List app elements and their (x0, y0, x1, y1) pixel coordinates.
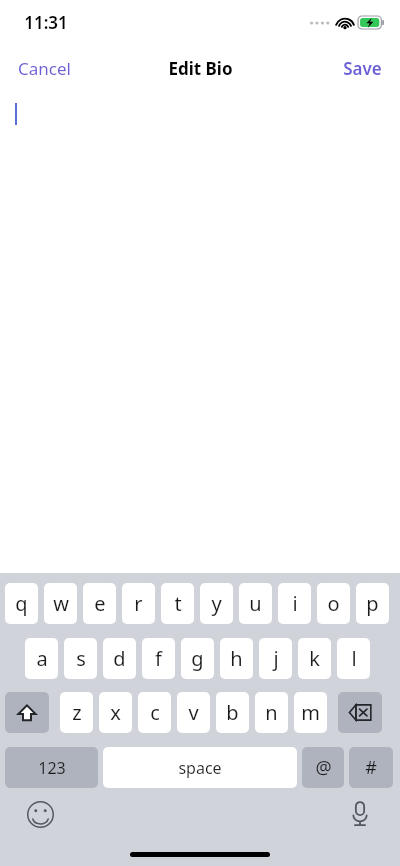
button[interactable]: j (259, 638, 292, 679)
staticText: Save (343, 57, 382, 80)
button[interactable]: g (181, 638, 214, 679)
button[interactable]: x (99, 692, 132, 733)
button[interactable]: o (317, 583, 350, 624)
staticText: 123 (38, 757, 66, 779)
staticText: s (76, 645, 86, 672)
button[interactable]: Save (325, 49, 400, 88)
staticText: x (110, 699, 121, 726)
button[interactable]: w (44, 583, 77, 624)
staticText: p (366, 590, 379, 617)
staticText: h (230, 645, 243, 672)
button[interactable]: c (138, 692, 171, 733)
button[interactable]: r (122, 583, 155, 624)
staticText: w (53, 590, 69, 617)
button[interactable]: z (60, 692, 93, 733)
button[interactable]: i (278, 583, 311, 624)
button[interactable]: Shift (5, 692, 49, 733)
staticText: u (249, 590, 262, 617)
staticText: c (150, 699, 160, 726)
staticText: y (211, 590, 222, 617)
button[interactable]: l (337, 638, 370, 679)
button[interactable]: d (103, 638, 136, 679)
staticText: g (191, 645, 204, 672)
button[interactable]: n (255, 692, 288, 733)
staticText: space (178, 757, 222, 779)
staticText: n (265, 699, 278, 726)
button[interactable]: @ (302, 747, 344, 788)
button[interactable]: h (220, 638, 253, 679)
staticText: v (188, 699, 199, 726)
button[interactable]: m (294, 692, 327, 733)
button[interactable]: s (64, 638, 97, 679)
staticText: 11:31 (24, 11, 68, 34)
staticText: f (155, 645, 162, 672)
button[interactable]: e (83, 583, 116, 624)
button[interactable]: Backspace (338, 692, 382, 733)
staticText: o (327, 590, 340, 617)
staticText: m (301, 699, 320, 726)
button[interactable]: Dictation (342, 796, 378, 832)
button[interactable]: space (103, 747, 297, 788)
staticText: e (94, 590, 106, 617)
staticText: i (292, 590, 298, 617)
staticText: Edit Bio (168, 57, 233, 80)
button[interactable]: 123 (5, 747, 98, 788)
staticText: # (365, 755, 377, 780)
staticText: l (351, 645, 357, 672)
staticText: Cancel (18, 57, 71, 80)
button[interactable]: p (356, 583, 389, 624)
button[interactable]: a (25, 638, 58, 679)
button[interactable]: q (5, 583, 38, 624)
staticText: b (226, 699, 239, 726)
button[interactable]: # (349, 747, 393, 788)
button[interactable]: f (142, 638, 175, 679)
button[interactable]: Cancel (0, 49, 89, 88)
button[interactable]: b (216, 692, 249, 733)
button[interactable]: y (200, 583, 233, 624)
button[interactable]: Emoji (22, 796, 58, 832)
button[interactable]: k (298, 638, 331, 679)
staticText: k (309, 645, 320, 672)
staticText: a (36, 645, 48, 672)
staticText: t (174, 590, 182, 617)
staticText: j (273, 645, 279, 672)
button[interactable]: v (177, 692, 210, 733)
staticText: z (72, 699, 82, 726)
button[interactable]: t (161, 583, 194, 624)
staticText: q (15, 590, 28, 617)
staticText: r (134, 590, 143, 617)
button[interactable]: u (239, 583, 272, 624)
staticText: @ (315, 755, 332, 780)
staticText: d (113, 645, 126, 672)
